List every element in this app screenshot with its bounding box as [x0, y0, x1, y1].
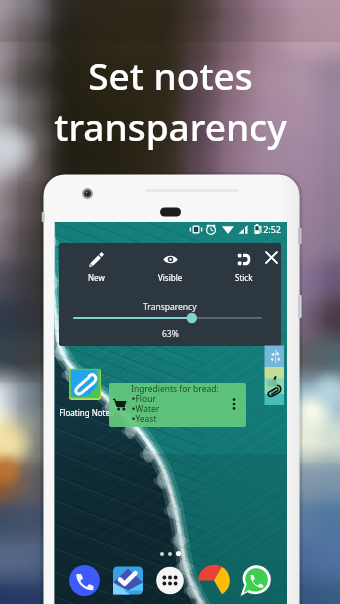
button[interactable]: Stick [207, 243, 281, 291]
button[interactable]: More options [226, 396, 242, 412]
button[interactable]: New [59, 243, 133, 291]
staticText: Flour [131, 393, 156, 405]
button[interactable]: Close [259, 245, 281, 269]
staticText: Water [131, 403, 160, 415]
button[interactable] [74, 311, 261, 325]
staticText: 12:52 [258, 223, 282, 235]
button[interactable]: Ingredients for bread: [109, 383, 246, 427]
staticText: Ingredients for bread: [131, 383, 219, 395]
staticText: Transparency [143, 301, 197, 313]
staticText: Floating Notes [59, 407, 114, 418]
staticText: Visible [158, 272, 183, 283]
staticText: 63% [162, 328, 179, 340]
staticText: Set notes [88, 50, 253, 100]
staticText: New [88, 272, 105, 283]
button[interactable]: Visible [133, 243, 207, 291]
staticText: Stick [235, 272, 253, 283]
staticText: transparency [54, 101, 287, 151]
staticText: Yeast [131, 413, 157, 425]
